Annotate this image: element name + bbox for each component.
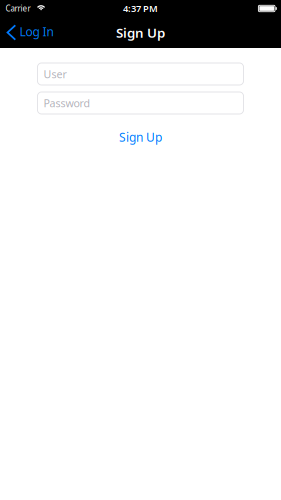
- staticText: Password: [43, 96, 90, 110]
- staticText: Log In: [19, 23, 53, 39]
- button[interactable]: Sign Up: [95, 129, 185, 145]
- staticText: Sign Up: [119, 129, 162, 145]
- staticText: 4:37 PM: [123, 2, 158, 15]
- staticText: Sign Up: [116, 24, 165, 41]
- staticText: User: [43, 67, 66, 81]
- staticText: Carrier: [6, 3, 31, 14]
- button[interactable]: Password: [37, 92, 243, 114]
- button[interactable]: User: [37, 63, 243, 85]
- button[interactable]: Log In: [0, 17, 61, 48]
